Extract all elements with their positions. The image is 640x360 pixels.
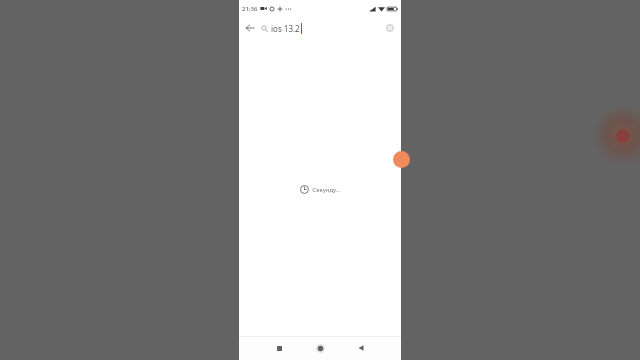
button[interactable]: Clear search [379, 17, 401, 39]
button[interactable]: Recent apps [269, 338, 289, 358]
button[interactable]: Floating action [393, 151, 410, 168]
staticText: 21:36 [242, 5, 258, 13]
staticText: ios 13.2 [271, 23, 300, 34]
staticText: Секунду… [312, 186, 341, 194]
button[interactable]: Home [310, 338, 330, 358]
button[interactable]: Back [239, 17, 261, 39]
button[interactable]: ios 13.2 [261, 17, 379, 39]
button[interactable]: Back [351, 338, 371, 358]
